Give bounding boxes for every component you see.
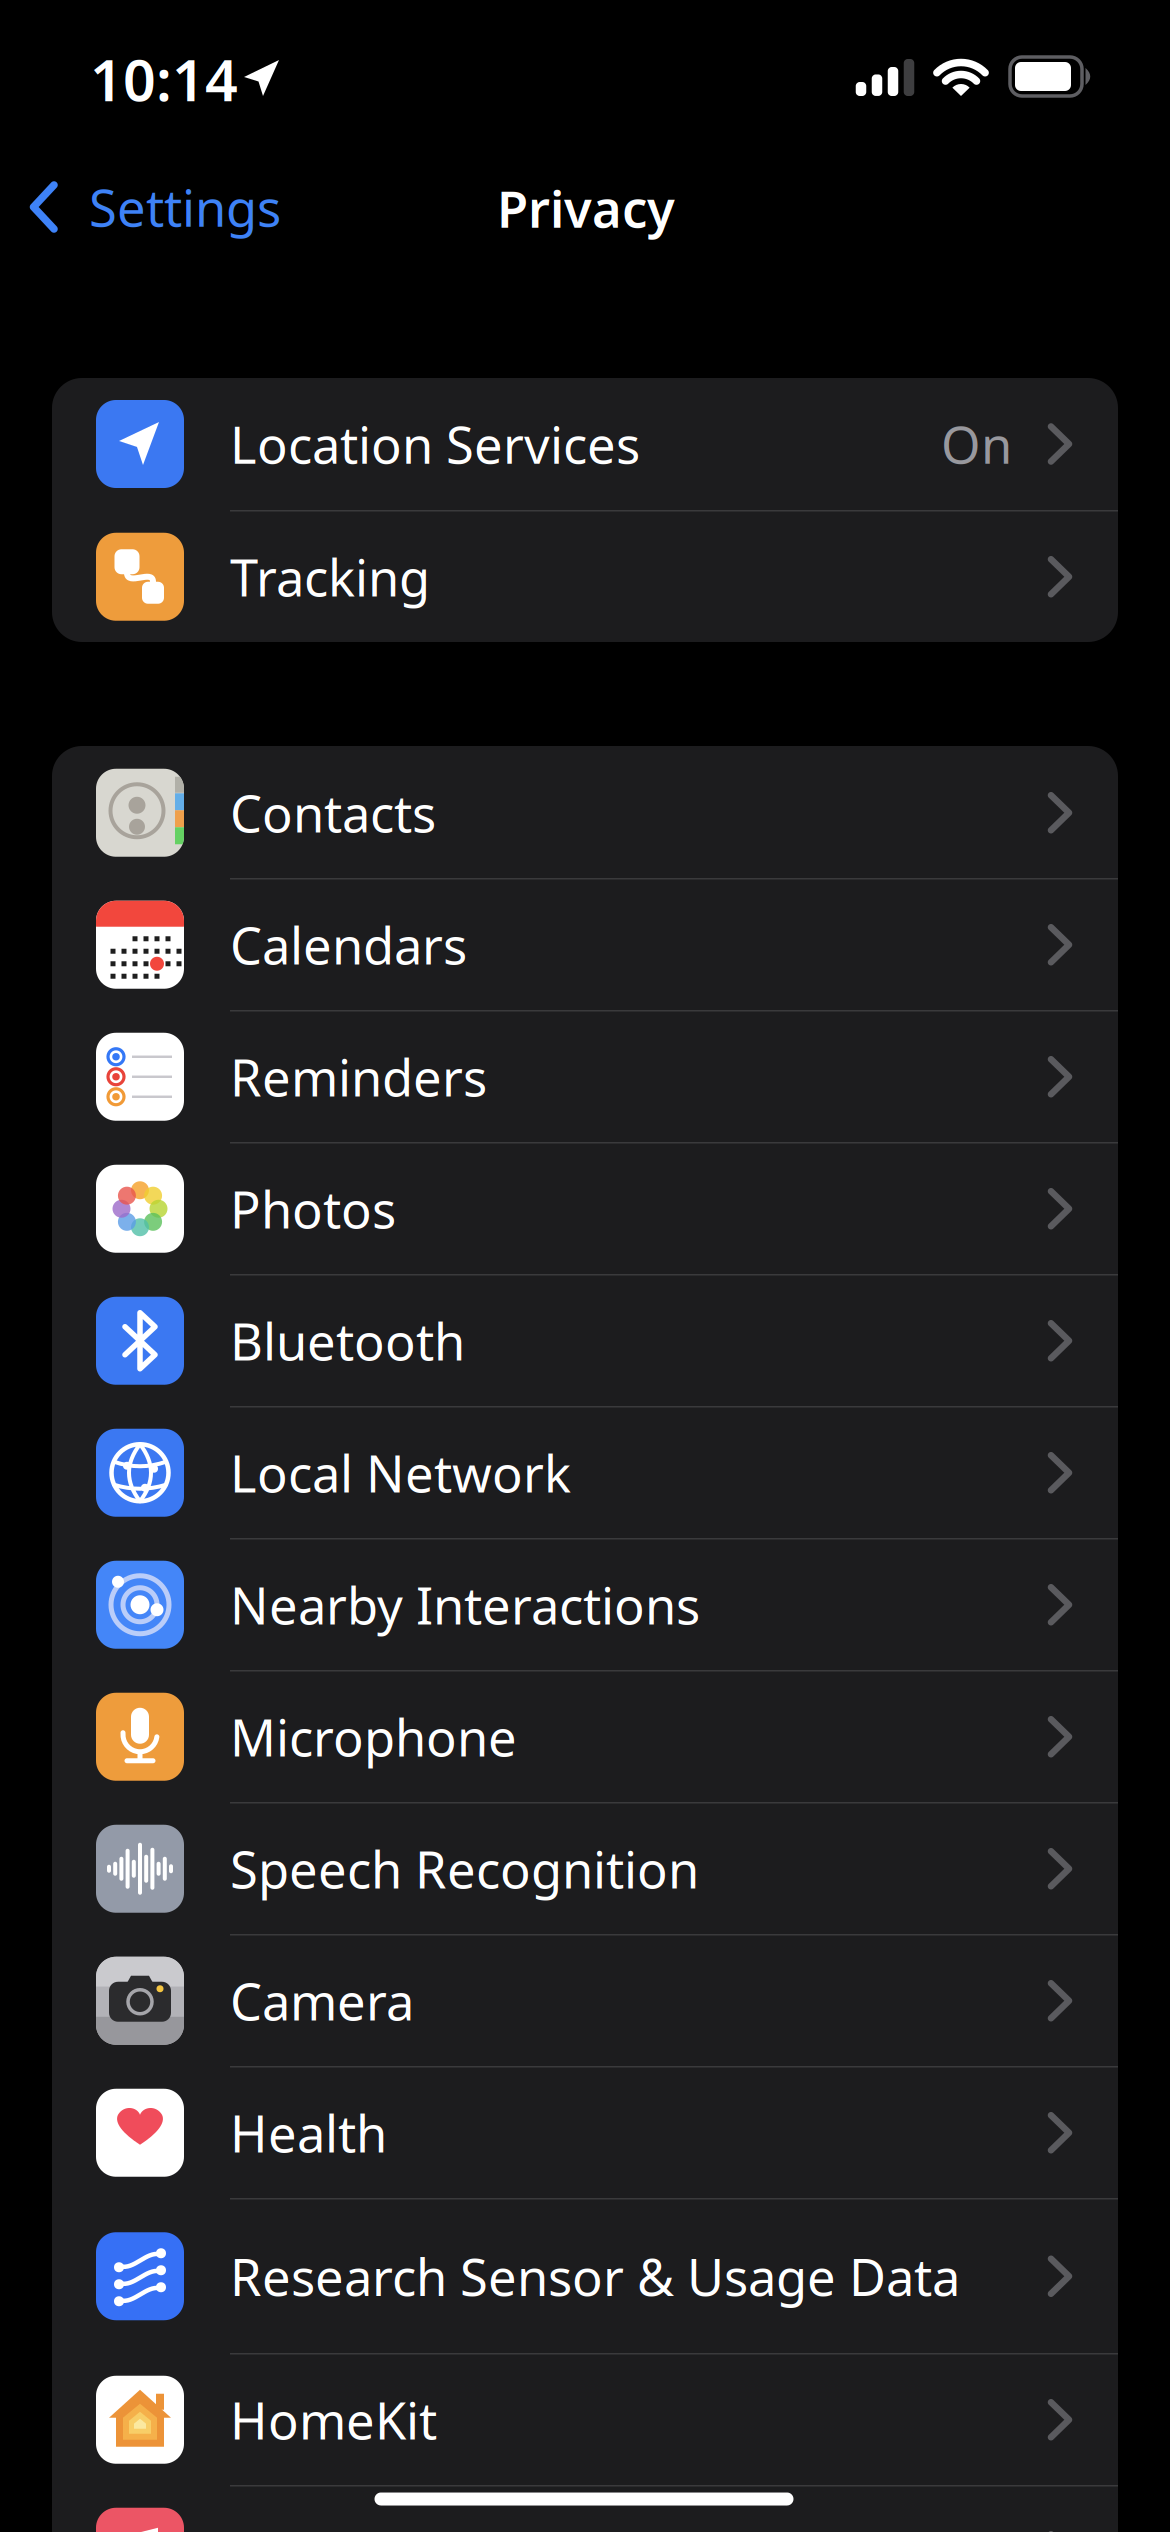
button[interactable]: Nearby Interactions: [52, 1539, 1118, 1670]
button[interactable]: Photos: [52, 1143, 1118, 1274]
button[interactable]: Media & Apple Music: [52, 2486, 1118, 2532]
button[interactable]: Reminders: [52, 1011, 1118, 1142]
button[interactable]: Calendars: [52, 879, 1118, 1010]
staticText: Bluetooth: [230, 1307, 465, 1374]
button[interactable]: Camera: [52, 1935, 1118, 2066]
button[interactable]: Local Network: [52, 1407, 1118, 1538]
button[interactable]: Settings: [0, 157, 500, 257]
staticText: Calendars: [230, 911, 467, 978]
button[interactable]: Contacts: [52, 747, 1118, 878]
staticText: Privacy: [497, 174, 675, 242]
staticText: Location Services: [230, 410, 640, 478]
button[interactable]: Bluetooth: [52, 1275, 1118, 1406]
button[interactable]: Location Services: [52, 378, 1118, 510]
button[interactable]: Microphone: [52, 1671, 1118, 1802]
staticText: Settings: [89, 173, 281, 241]
button[interactable]: Health: [52, 2067, 1118, 2198]
staticText: 10:14: [90, 41, 238, 117]
staticText: On: [941, 410, 1012, 478]
staticText: Photos: [230, 1175, 396, 1242]
button[interactable]: Tracking: [52, 511, 1118, 642]
staticText: Speech Recognition: [230, 1835, 699, 1902]
staticText: Microphone: [230, 1703, 517, 1770]
staticText: Nearby Interactions: [230, 1571, 700, 1638]
staticText: Camera: [230, 1967, 414, 2034]
staticText: Reminders: [230, 1043, 487, 1110]
staticText: Contacts: [230, 779, 436, 846]
button[interactable]: Research Sensor & Usage Data: [52, 2199, 1118, 2353]
staticText: Health: [230, 2099, 387, 2166]
button[interactable]: HomeKit: [52, 2354, 1118, 2485]
staticText: Research Sensor & Usage Data: [230, 2243, 960, 2310]
staticText: HomeKit: [230, 2386, 437, 2453]
staticText: Tracking: [230, 543, 430, 610]
staticText: Local Network: [230, 1439, 571, 1506]
button[interactable]: Speech Recognition: [52, 1803, 1118, 1934]
